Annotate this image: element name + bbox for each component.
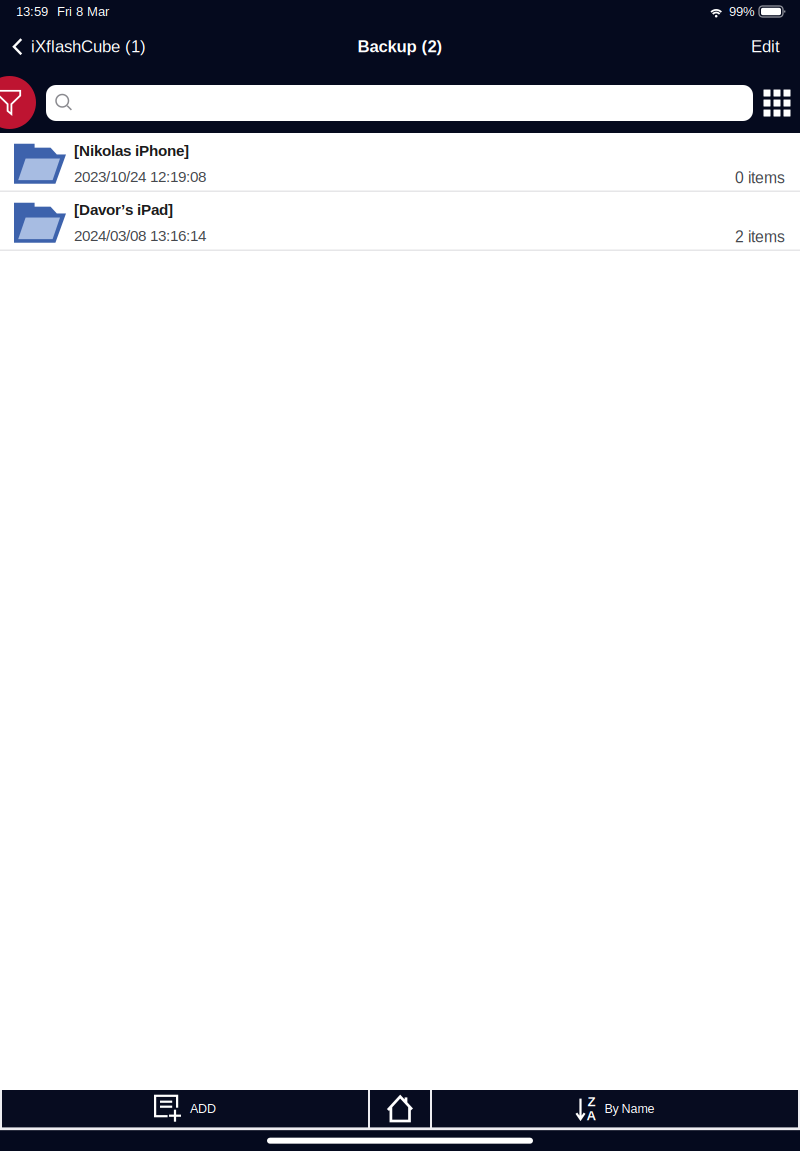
button[interactable]: Z bbox=[432, 1090, 798, 1127]
button[interactable]: [Davor’s iPad] bbox=[0, 192, 800, 251]
staticText: Z bbox=[587, 1094, 595, 1109]
button[interactable]: Edit bbox=[751, 28, 800, 65]
button[interactable]: Grid view bbox=[757, 83, 797, 123]
staticText: Backup (2) bbox=[357, 37, 442, 56]
staticText: 0 items bbox=[735, 169, 785, 187]
button[interactable]: iXflashCube (1) bbox=[0, 28, 146, 65]
button[interactable]: Filter bbox=[0, 76, 36, 129]
staticText: Edit bbox=[751, 37, 780, 56]
staticText: ADD bbox=[190, 1102, 216, 1116]
staticText: [Davor’s iPad] bbox=[74, 201, 173, 218]
staticText: A bbox=[586, 1108, 596, 1123]
button[interactable]: Home bbox=[370, 1090, 430, 1127]
button[interactable]: ADD bbox=[2, 1090, 368, 1127]
staticText: 13:59 bbox=[16, 4, 48, 19]
staticText: By Name bbox=[604, 1102, 654, 1116]
staticText: iXflashCube (1) bbox=[31, 37, 146, 56]
button[interactable]: [Nikolas iPhone] bbox=[0, 133, 800, 192]
staticText: 2 items bbox=[735, 228, 785, 246]
staticText: Fri 8 Mar bbox=[57, 4, 109, 19]
staticText: 2023/10/24 12:19:08 bbox=[74, 168, 206, 185]
staticText: [Nikolas iPhone] bbox=[74, 142, 189, 159]
staticText: 99% bbox=[729, 4, 755, 19]
staticText: 2024/03/08 13:16:14 bbox=[74, 227, 206, 244]
